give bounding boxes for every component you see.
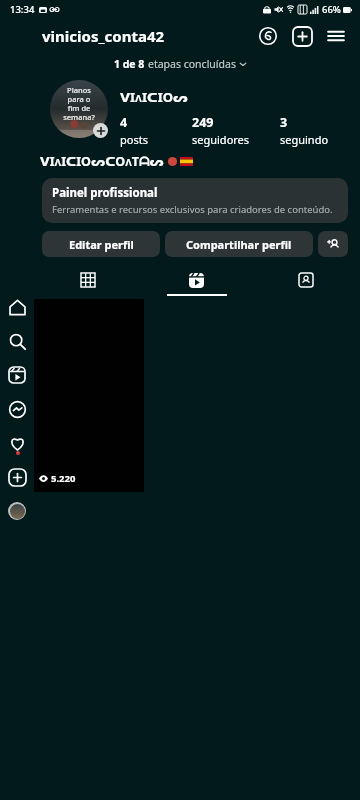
staticText: Painel profissional	[52, 185, 158, 201]
button[interactable]: Profile	[0, 494, 34, 528]
staticText: ᐯIᴧIᑕIOᔕᑕOᴧTᗩᔕ	[40, 153, 164, 170]
staticText: Compartilhar perfil	[186, 237, 292, 252]
staticText: seguidores	[192, 132, 250, 147]
button[interactable]: Planos para o fim de semana?	[48, 78, 110, 140]
button[interactable]: Compartilhar perfil	[165, 231, 313, 257]
staticText: Planos para o fim de semana?	[63, 85, 95, 122]
button[interactable]: 249	[192, 114, 280, 147]
button[interactable]: Add to story	[93, 123, 108, 138]
button[interactable]: Messages	[0, 392, 34, 426]
staticText: 1 de 8	[114, 57, 148, 71]
button[interactable]: 5.220	[34, 299, 144, 492]
staticText: 5.220	[51, 472, 76, 485]
staticText: seguindo	[280, 132, 329, 147]
button[interactable]: Editar perfil	[42, 231, 160, 257]
staticText: Editar perfil	[69, 237, 134, 252]
button[interactable]: Posts grid	[34, 267, 142, 293]
staticText: 3	[280, 114, 288, 131]
button[interactable]: Create	[0, 460, 34, 494]
button[interactable]: 3	[280, 114, 348, 147]
button[interactable]: Reels	[142, 267, 251, 293]
staticText: ᐯIᴧIᑕIOᔕ	[120, 88, 188, 106]
staticText: posts	[120, 132, 148, 147]
staticText: 4	[120, 114, 128, 131]
button[interactable]: 4	[120, 114, 192, 147]
staticText: Ferramentas e recursos exclusivos para c…	[52, 203, 333, 216]
button[interactable]: Home	[0, 290, 34, 324]
button[interactable]: Activity	[0, 426, 34, 460]
staticText: vinicios_conta42	[42, 26, 165, 46]
button[interactable]: 1 de 8	[0, 54, 360, 74]
staticText: etapas concluídas	[148, 57, 239, 71]
button[interactable]: Tagged	[251, 267, 360, 293]
button[interactable]: Painel profissional	[42, 178, 348, 223]
button[interactable]: Menu	[322, 22, 350, 50]
button[interactable]: Search	[0, 324, 34, 358]
staticText: 13:34	[10, 3, 35, 16]
staticText: 249	[192, 114, 214, 131]
button[interactable]: Create	[288, 22, 316, 50]
staticText: 66%	[322, 3, 341, 16]
button[interactable]: Threads	[254, 22, 282, 50]
button[interactable]: Reels	[0, 358, 34, 392]
button[interactable]: Discover people	[318, 231, 348, 257]
